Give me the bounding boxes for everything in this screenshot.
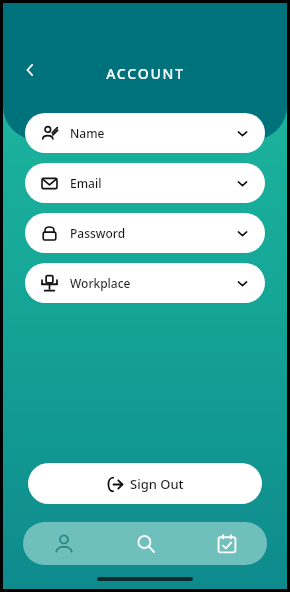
button[interactable]: Profile xyxy=(23,522,105,565)
button[interactable]: Search xyxy=(105,522,186,565)
staticText: ACCOUNT xyxy=(106,64,185,83)
staticText: Password xyxy=(70,225,126,241)
button[interactable]: Sign Out xyxy=(28,463,262,504)
button[interactable]: Email xyxy=(25,163,265,203)
staticText: Name xyxy=(70,125,105,141)
staticText: Workplace xyxy=(70,275,131,291)
button[interactable]: Calendar xyxy=(186,522,267,565)
button[interactable]: Back xyxy=(13,53,47,87)
staticText: Email xyxy=(70,175,102,191)
button[interactable]: Name xyxy=(25,113,265,153)
button[interactable]: Workplace xyxy=(25,263,265,303)
staticText: Sign Out xyxy=(130,475,184,493)
button[interactable]: Password xyxy=(25,213,265,253)
